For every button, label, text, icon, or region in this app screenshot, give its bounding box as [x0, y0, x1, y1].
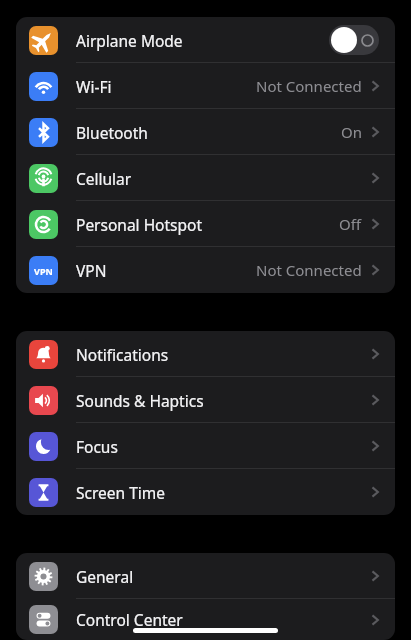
button[interactable]: Airplane Mode toggle	[329, 25, 379, 55]
staticText: VPN	[76, 260, 107, 281]
button[interactable]: VPN	[16, 247, 395, 293]
button[interactable]: Notifications	[16, 331, 395, 377]
staticText: Notifications	[76, 344, 169, 365]
button[interactable]: Cellular	[16, 155, 395, 201]
staticText: Off	[339, 214, 362, 234]
staticText: Airplane Mode	[76, 30, 183, 51]
button[interactable]: Wi-Fi	[16, 63, 395, 109]
staticText: VPN	[34, 265, 53, 277]
staticText: Bluetooth	[76, 122, 148, 143]
staticText: Not Connected	[256, 260, 362, 280]
staticText: Personal Hotspot	[76, 214, 203, 235]
staticText: Cellular	[76, 168, 132, 189]
staticText: General	[76, 566, 134, 587]
staticText: Focus	[76, 436, 118, 457]
button[interactable]: Screen Time	[16, 469, 395, 515]
staticText: Not Connected	[256, 76, 362, 96]
button[interactable]: Control Center	[16, 599, 395, 640]
staticText: Wi-Fi	[76, 76, 112, 97]
button[interactable]: Airplane Mode	[16, 17, 395, 63]
staticText: Control Center	[76, 609, 183, 630]
button[interactable]: Bluetooth	[16, 109, 395, 155]
staticText: Screen Time	[76, 482, 165, 503]
button[interactable]: Sounds & Haptics	[16, 377, 395, 423]
staticText: On	[341, 122, 362, 142]
button[interactable]: Personal Hotspot	[16, 201, 395, 247]
staticText: Sounds & Haptics	[76, 390, 204, 411]
button[interactable]: Focus	[16, 423, 395, 469]
button[interactable]: General	[16, 553, 395, 599]
